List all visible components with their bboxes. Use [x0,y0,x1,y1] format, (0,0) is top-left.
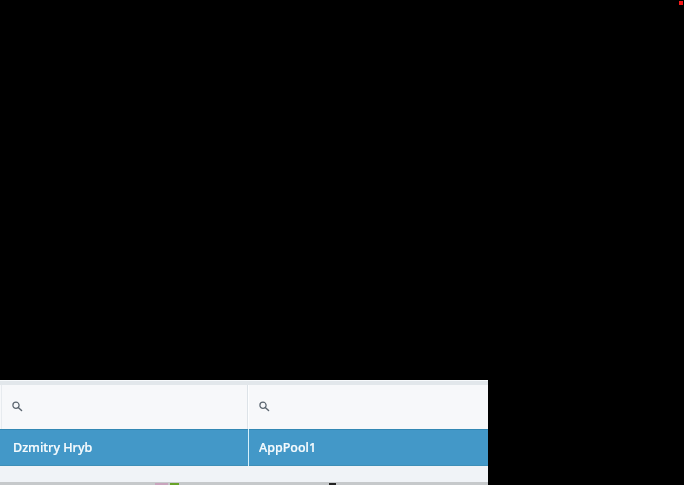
staticText: Dzmitry Hryb [13,439,93,456]
staticText: AppPool1 [259,439,317,456]
button[interactable]: Search [0,385,248,429]
button[interactable]: Search [248,385,488,429]
button[interactable]: AppPool1 [248,429,488,466]
button[interactable]: Dzmitry Hryb [0,429,248,466]
